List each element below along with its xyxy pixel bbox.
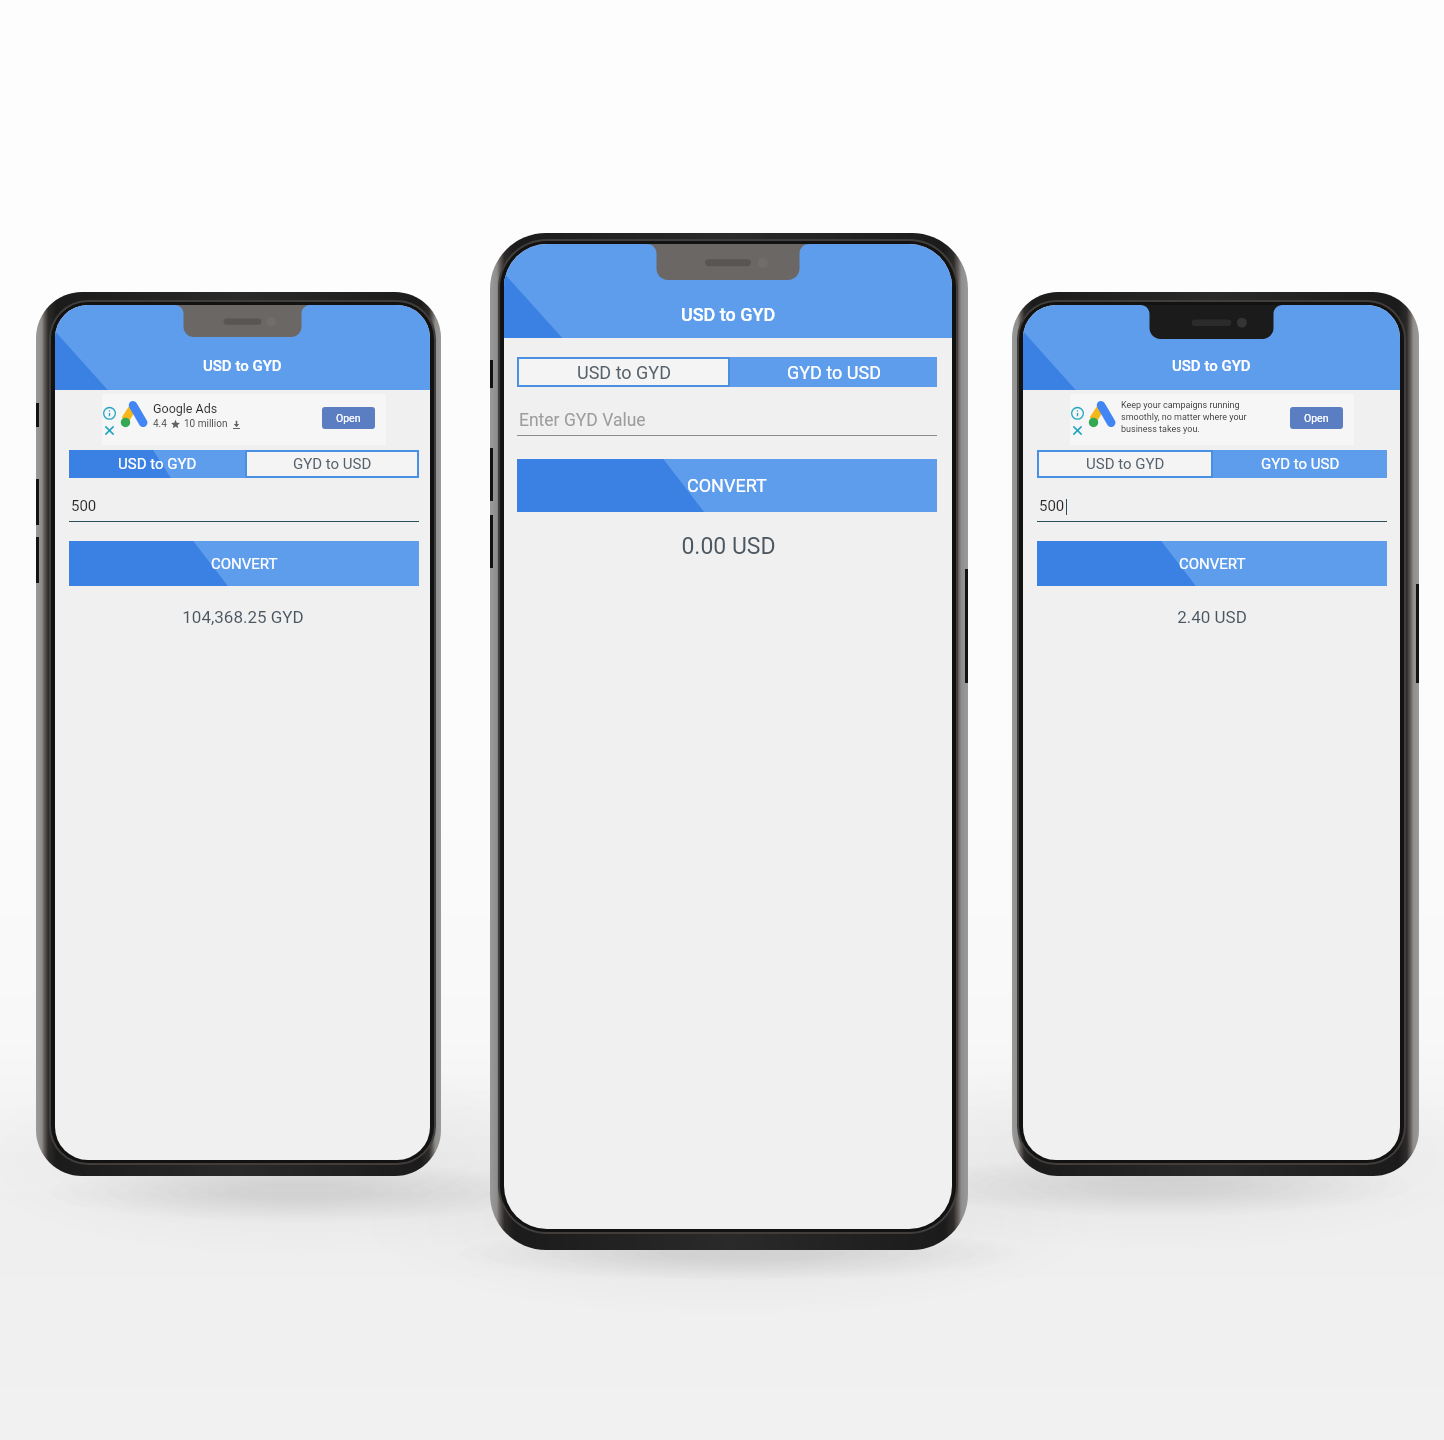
staticText: USD to GYD	[203, 357, 282, 375]
button[interactable]: CONVERT	[69, 541, 419, 586]
staticText: GYD to USD	[787, 362, 881, 383]
staticText: 4.4	[153, 418, 167, 430]
staticText: 500	[1039, 497, 1065, 515]
staticText: 10 million	[184, 418, 228, 430]
staticText: Enter GYD Value	[519, 410, 646, 431]
staticText: 500	[71, 497, 97, 515]
button[interactable]: Ad info	[1071, 405, 1084, 420]
button[interactable]: GYD to USD	[730, 357, 937, 387]
button[interactable]: Open	[1290, 407, 1343, 429]
button[interactable]: GYD to USD	[1213, 450, 1387, 478]
button[interactable]: Ad info	[103, 405, 116, 420]
staticText: Open	[336, 412, 361, 424]
staticText: CONVERT	[687, 475, 767, 496]
button[interactable]: CONVERT	[517, 459, 937, 512]
button[interactable]: USD to GYD	[69, 450, 245, 478]
staticText: Google Ads	[153, 401, 218, 416]
staticText: USD to GYD	[1086, 455, 1165, 473]
button[interactable]: Open	[322, 407, 375, 429]
staticText: Open	[1304, 412, 1329, 424]
staticText: USD to GYD	[1172, 357, 1251, 375]
staticText: GYD to USD	[293, 455, 372, 473]
staticText: USD to GYD	[118, 455, 197, 473]
staticText: USD to GYD	[577, 362, 671, 383]
button[interactable]: USD to GYD	[1037, 450, 1213, 478]
button[interactable]: USD to GYD	[517, 357, 730, 387]
button[interactable]: Close ad	[1071, 424, 1084, 439]
button[interactable]: Close ad	[103, 424, 116, 439]
button[interactable]: GYD to USD	[245, 450, 419, 478]
staticText: USD to GYD	[681, 304, 776, 325]
button[interactable]: CONVERT	[1037, 541, 1387, 586]
staticText: GYD to USD	[1261, 455, 1340, 473]
staticText: 0.00 USD	[681, 533, 776, 560]
staticText: CONVERT	[211, 555, 278, 573]
staticText: CONVERT	[1179, 555, 1246, 573]
staticText: 2.40 USD	[1177, 607, 1247, 627]
staticText: Keep your campaigns running smoothly, no…	[1121, 400, 1266, 434]
staticText: 104,368.25 GYD	[182, 607, 304, 627]
